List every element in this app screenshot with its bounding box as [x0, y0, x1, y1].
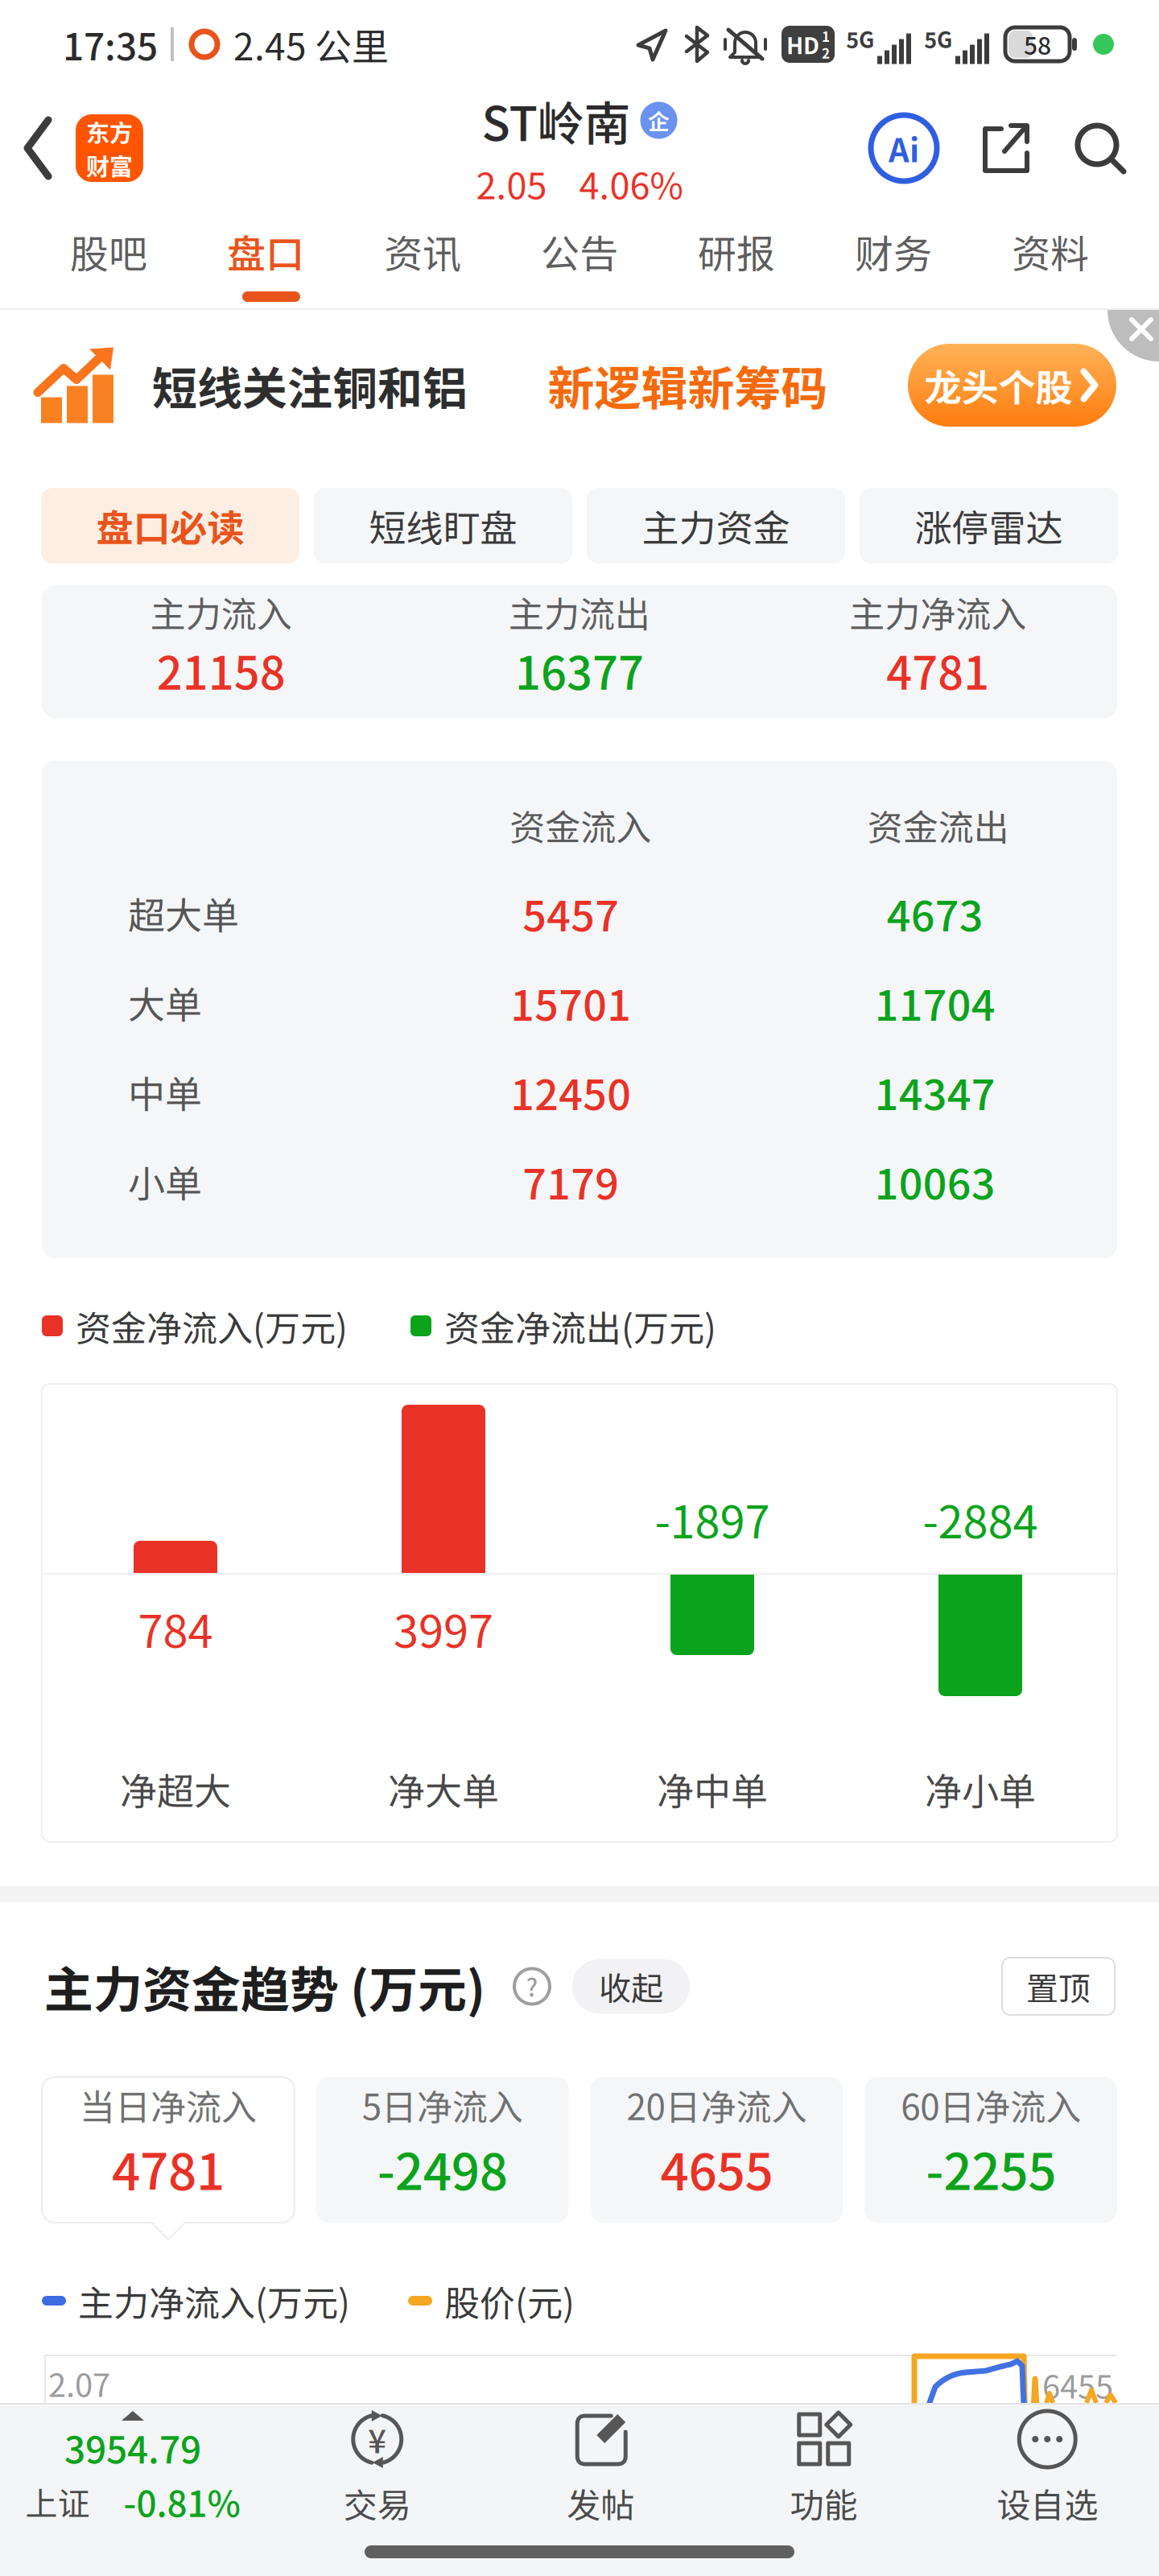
- button[interactable]: 盘口: [227, 223, 304, 279]
- staticText: 功能: [790, 2479, 858, 2528]
- staticText: 新逻辑新筹码: [548, 351, 828, 419]
- staticText: 资讯: [384, 223, 461, 279]
- staticText: 2.05: [476, 157, 547, 210]
- staticText: -2255: [926, 2132, 1056, 2204]
- staticText: 12450: [510, 1061, 631, 1122]
- button[interactable]: 3954.79: [0, 2411, 266, 2527]
- staticText: 设自选: [997, 2479, 1098, 2528]
- button[interactable]: 功能: [712, 2411, 936, 2528]
- button[interactable]: AI 助手: [871, 115, 937, 181]
- staticText: -0.81%: [124, 2476, 240, 2527]
- staticText: 盘口: [227, 223, 304, 279]
- button[interactable]: 资讯: [384, 223, 461, 279]
- button[interactable]: Share: [977, 121, 1032, 175]
- button[interactable]: 股吧: [70, 223, 147, 279]
- button[interactable]: 东方财富: [76, 114, 143, 182]
- staticText: 7179: [523, 1151, 619, 1211]
- button[interactable]: 短线盯盘: [314, 488, 572, 563]
- button[interactable]: 60日净流入: [865, 2077, 1117, 2223]
- staticText: ¥: [368, 2416, 386, 2462]
- staticText: 16377: [515, 637, 644, 703]
- button[interactable]: 公告: [541, 223, 618, 279]
- staticText: 龙头个股: [924, 358, 1072, 412]
- button[interactable]: 20日净流入: [590, 2077, 843, 2223]
- button[interactable]: 设自选: [936, 2411, 1159, 2528]
- staticText: 60日净流入: [901, 2079, 1081, 2130]
- button[interactable]: 置顶: [1002, 1958, 1115, 2015]
- staticText: 5457: [523, 883, 619, 943]
- staticText: HD: [786, 28, 819, 61]
- staticText: 4673: [887, 883, 983, 943]
- button[interactable]: 5日净流入: [316, 2077, 569, 2223]
- staticText: 4.06%: [579, 157, 683, 210]
- staticText: 5G: [924, 23, 952, 54]
- staticText: 上证: [25, 2478, 90, 2525]
- button[interactable]: Back: [24, 117, 53, 180]
- staticText: 当日净流入: [80, 2079, 257, 2130]
- staticText: 净超大: [120, 1762, 231, 1816]
- staticText: 1: [822, 26, 830, 46]
- staticText: 大单: [128, 976, 202, 1029]
- staticText: Ai: [889, 125, 919, 171]
- staticText: 20日净流入: [627, 2079, 807, 2130]
- staticText: 2.45 公里: [233, 17, 389, 71]
- button[interactable]: 涨停雷达: [860, 488, 1118, 563]
- staticText: 58: [1024, 27, 1051, 62]
- button[interactable]: ¥: [266, 2411, 489, 2528]
- staticText: 发帖: [567, 2479, 634, 2528]
- staticText: 净大单: [388, 1762, 499, 1816]
- staticText: 涨停雷达: [915, 499, 1063, 552]
- staticText: 主力净流入(万元): [78, 2275, 350, 2326]
- staticText: 主力资金: [642, 499, 790, 552]
- staticText: 主力流入: [150, 586, 292, 637]
- staticText: 盘口必读: [96, 499, 244, 552]
- staticText: 资金流出: [867, 799, 1009, 851]
- button[interactable]: Search: [1072, 120, 1128, 176]
- staticText: 资料: [1012, 223, 1089, 279]
- staticText: 14347: [875, 1061, 995, 1122]
- staticText: 784: [138, 1596, 213, 1661]
- staticText: 5G: [846, 23, 874, 54]
- button[interactable]: 盘口必读: [41, 488, 299, 563]
- staticText: 公告: [541, 223, 618, 279]
- button[interactable]: 当日净流入: [42, 2077, 294, 2223]
- staticText: 4781: [886, 637, 989, 703]
- staticText: 主力资金趋势 (万元): [44, 1951, 485, 2022]
- staticText: 研报: [698, 223, 775, 279]
- staticText: 资金净流出(万元): [444, 1300, 716, 1351]
- staticText: 财富: [86, 148, 133, 182]
- staticText: -2884: [923, 1486, 1038, 1551]
- button[interactable]: 收起: [572, 1959, 690, 2014]
- button[interactable]: 财务: [855, 223, 932, 279]
- staticText: 短线关注铜和铝: [152, 353, 468, 418]
- staticText: -2498: [377, 2132, 508, 2204]
- staticText: 交易: [344, 2479, 411, 2528]
- staticText: ?: [526, 1969, 538, 2004]
- staticText: 11704: [875, 972, 995, 1033]
- staticText: ST岭南: [482, 86, 631, 154]
- staticText: 3954.79: [64, 2421, 201, 2474]
- staticText: 2: [822, 43, 830, 62]
- staticText: 21158: [157, 637, 285, 703]
- staticText: 企: [648, 105, 670, 136]
- staticText: 财务: [855, 223, 932, 279]
- staticText: 资金净流入(万元): [76, 1300, 348, 1351]
- staticText: 17:35: [63, 17, 158, 71]
- button[interactable]: 主力资金: [587, 488, 845, 563]
- staticText: 小单: [128, 1154, 202, 1208]
- staticText: 净中单: [657, 1762, 768, 1816]
- staticText: 10063: [875, 1151, 995, 1211]
- staticText: 4655: [660, 2132, 773, 2204]
- staticText: 15701: [510, 972, 631, 1033]
- staticText: 置顶: [1026, 1963, 1091, 2010]
- staticText: 资金流入: [510, 799, 651, 851]
- button[interactable]: 发帖: [489, 2411, 712, 2528]
- staticText: 股吧: [70, 223, 147, 279]
- button[interactable]: 短线关注铜和铝: [0, 310, 1159, 427]
- button[interactable]: 资料: [1012, 223, 1089, 279]
- button[interactable]: 研报: [698, 223, 775, 279]
- staticText: 中单: [128, 1065, 202, 1119]
- staticText: 股价(元): [444, 2275, 575, 2326]
- button[interactable]: Close banner: [1054, 310, 1159, 366]
- staticText: 东方: [86, 114, 133, 148]
